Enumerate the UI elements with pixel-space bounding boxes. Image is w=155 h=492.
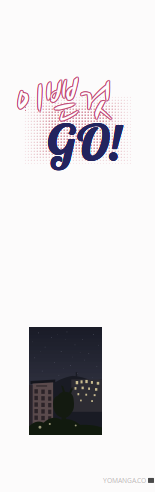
staticText: 이쁜것 [15, 76, 111, 132]
staticText: 이쁜것 [17, 76, 113, 132]
staticText: GO! [46, 112, 122, 173]
staticText: YOMANGA.CO [103, 476, 146, 485]
staticText: 이쁜것 [15, 74, 111, 130]
staticText: 이쁜것 [16, 76, 112, 132]
staticText: 이쁜것 [16, 74, 112, 130]
staticText: 이쁜것 [17, 75, 113, 131]
staticText: 이쁜것 [15, 75, 111, 131]
staticText: GO! [46, 111, 122, 173]
staticText: GO! [46, 111, 122, 172]
staticText: GO! [46, 111, 122, 173]
staticText: GO! [46, 111, 122, 173]
staticText: GO! [46, 111, 122, 173]
staticText: GO! [46, 111, 122, 173]
staticText: GO! [46, 111, 122, 173]
staticText: 이쁜것 [17, 74, 113, 130]
staticText: GO! [46, 111, 122, 173]
staticText: 이쁜것 [16, 75, 112, 131]
